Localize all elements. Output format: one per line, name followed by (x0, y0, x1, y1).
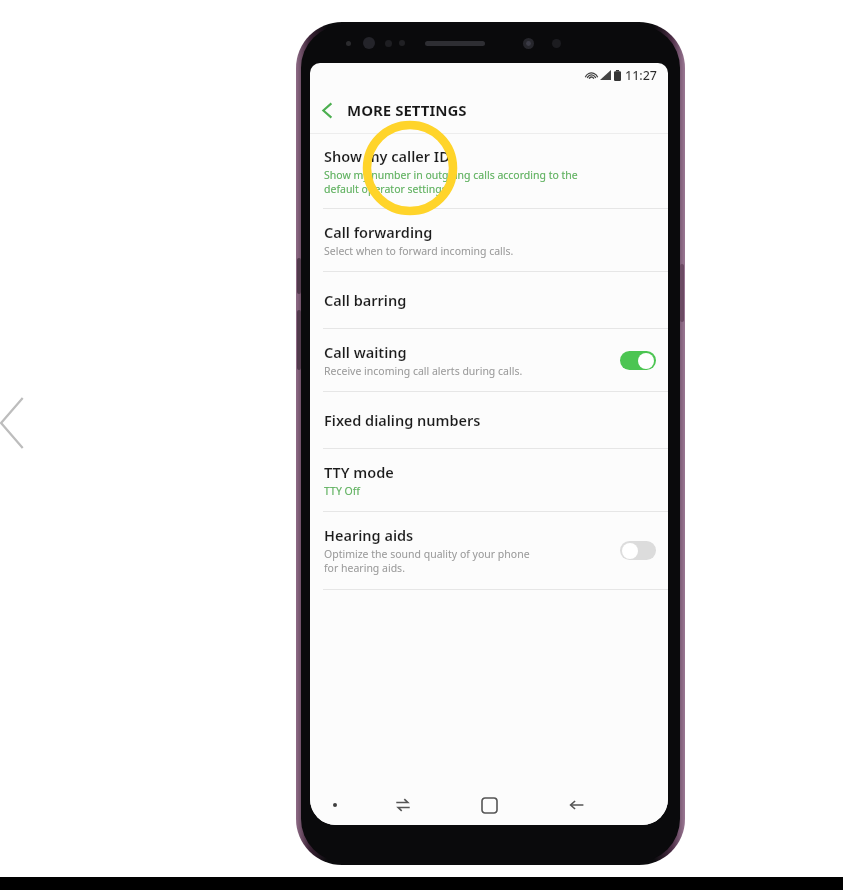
staticText: TTY Off (324, 484, 360, 498)
button[interactable]: Call waiting (310, 329, 668, 391)
staticText: Show my caller ID (324, 146, 450, 166)
button[interactable]: Home (446, 785, 533, 825)
staticText: MORE SETTINGS (347, 100, 467, 120)
button[interactable]: Back (310, 93, 344, 127)
staticText: Fixed dialing numbers (324, 410, 481, 430)
button[interactable]: Hearing aids (310, 512, 668, 589)
button[interactable]: Recents (359, 785, 446, 825)
staticText: Hearing aids (324, 525, 414, 545)
staticText: 11:27 (625, 67, 658, 84)
button[interactable]: Toggle off (620, 541, 656, 560)
staticText: Select when to forward incoming calls. (324, 244, 514, 258)
staticText: Show my number in outgoing calls accordi… (324, 168, 578, 196)
button[interactable]: Fixed dialing numbers (310, 392, 668, 448)
staticText: Call waiting (324, 342, 407, 362)
button[interactable]: TTY mode (310, 449, 668, 511)
staticText: TTY mode (324, 462, 394, 482)
staticText: Optimize the sound quality of your phone… (324, 547, 530, 575)
staticText: Call forwarding (324, 222, 433, 242)
button[interactable]: Call forwarding (310, 209, 668, 271)
button[interactable]: Show my caller ID (310, 134, 668, 208)
staticText: Call barring (324, 290, 407, 310)
staticText: Receive incoming call alerts during call… (324, 364, 523, 378)
button[interactable]: Toggle on (620, 351, 656, 370)
button[interactable]: Call barring (310, 272, 668, 328)
button[interactable]: Back (533, 785, 620, 825)
